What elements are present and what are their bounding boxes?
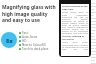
button[interactable]: New to Colourfill <box>19 43 55 47</box>
button[interactable]: Torch in dark place <box>19 47 55 51</box>
staticText: Auto-focus <box>22 35 38 39</box>
button[interactable]: Magnifier app icon <box>1 32 17 48</box>
button[interactable]: Fast <box>19 31 55 35</box>
staticText: New to Colourfill <box>22 43 46 47</box>
staticText: Another heading in the article <box>62 35 88 41</box>
staticText: Nemo enim ipsam voluptatem quia voluptas… <box>62 41 88 50</box>
button[interactable]: HD <box>19 39 55 43</box>
staticText: Section heading of the page here <box>62 5 88 11</box>
button[interactable]: Auto-focus <box>19 35 55 39</box>
staticText: Magnifying glass with high image quality… <box>2 4 56 23</box>
staticText: Torch in dark place <box>22 47 49 51</box>
staticText: Lorem ipsum dolor sit amet consectetur a… <box>62 11 88 34</box>
staticText: Lorem ipsum dolor sit amet consectetur a… <box>91 2 96 64</box>
staticText: Fast <box>22 31 28 35</box>
staticText: HD <box>22 39 27 43</box>
staticText: 8x <box>6 37 13 44</box>
